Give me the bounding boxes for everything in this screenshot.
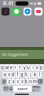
button[interactable]: ⇧ — [1, 79, 6, 85]
staticText: 9:41 — [3, 1, 13, 6]
staticText: ☺ — [9, 87, 13, 91]
button[interactable]: s — [7, 72, 11, 78]
button[interactable]: Safari — [23, 7, 31, 15]
button[interactable]: Music — [1, 7, 9, 15]
button[interactable]: e — [9, 65, 13, 71]
staticText: n — [29, 79, 32, 84]
staticText: c — [17, 79, 19, 84]
button[interactable]: r — [14, 65, 17, 71]
button[interactable]: p — [40, 65, 43, 71]
button[interactable]: z — [7, 79, 11, 85]
staticText: j — [30, 72, 31, 77]
button[interactable]: f — [16, 72, 19, 78]
button[interactable]: t — [18, 65, 22, 71]
staticText: 123 — [3, 87, 8, 90]
button[interactable]: n — [29, 79, 33, 85]
staticText: m — [33, 79, 37, 84]
button[interactable]: y — [22, 65, 26, 71]
staticText: r — [14, 65, 16, 70]
button[interactable]: return — [32, 86, 41, 92]
staticText: u — [27, 65, 30, 70]
button[interactable]: o — [35, 65, 39, 71]
staticText: x — [12, 79, 14, 84]
staticText: k — [34, 72, 36, 77]
staticText: v — [21, 79, 23, 84]
button[interactable]: a — [3, 72, 6, 78]
staticText: s — [8, 72, 10, 77]
staticText: ⌫ — [38, 79, 43, 84]
staticText: i — [32, 65, 33, 70]
staticText: e — [10, 65, 12, 70]
staticText: return — [33, 85, 41, 92]
button[interactable]: l — [37, 72, 41, 78]
staticText: a — [4, 72, 6, 77]
button[interactable]: m — [33, 79, 37, 85]
staticText: t — [19, 65, 20, 70]
staticText: g — [20, 72, 23, 77]
staticText: b — [25, 79, 28, 84]
button[interactable]: 123 — [3, 86, 9, 92]
staticText: ⇧ — [2, 79, 6, 84]
staticText: f — [17, 72, 19, 77]
button[interactable]: j — [29, 72, 33, 78]
button[interactable]: q — [0, 65, 4, 71]
staticText: p — [40, 65, 43, 70]
button[interactable]: w — [5, 65, 9, 71]
button[interactable]: d — [11, 72, 15, 78]
button[interactable]: k — [33, 72, 37, 78]
staticText: z — [8, 79, 10, 84]
staticText: ◗ — [34, 1, 36, 5]
button[interactable]: u — [27, 65, 30, 71]
button[interactable]: x — [11, 79, 15, 85]
button[interactable]: b — [24, 79, 28, 85]
staticText: Siri Suggestions — [2, 52, 28, 57]
button[interactable]: i — [31, 65, 35, 71]
button[interactable]: h — [24, 72, 28, 78]
staticText: q — [1, 65, 4, 70]
button[interactable]: c — [16, 79, 19, 85]
staticText: o — [36, 65, 39, 70]
staticText: d — [12, 72, 15, 77]
staticText: y — [23, 65, 25, 70]
button[interactable]: space — [13, 86, 32, 92]
button[interactable]: v — [20, 79, 24, 85]
button[interactable]: g — [20, 72, 24, 78]
button[interactable]: ⌫ — [37, 79, 43, 85]
staticText: space — [18, 87, 28, 91]
button[interactable]: Messages — [12, 7, 20, 15]
staticText: w — [5, 65, 8, 70]
staticText: ♪ — [4, 8, 7, 15]
button[interactable]: ☺ — [9, 86, 13, 92]
button[interactable]: Health — [34, 7, 42, 15]
staticText: h — [25, 72, 28, 77]
staticText: l — [39, 72, 40, 77]
